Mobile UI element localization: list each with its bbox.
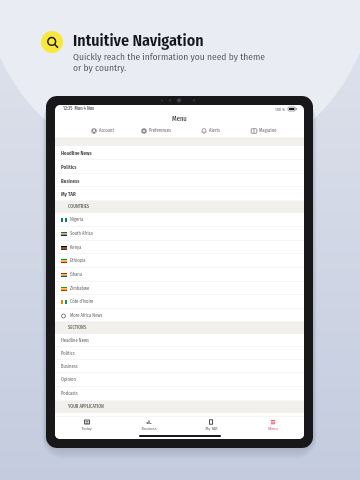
staticText: Alerts [209, 128, 220, 134]
staticText: Magazine [259, 128, 277, 134]
staticText: Zimbabwe [70, 286, 90, 292]
button[interactable]: Business [55, 360, 304, 373]
staticText: Côte d'Ivoire [70, 299, 94, 305]
button[interactable]: Preferences [129, 125, 183, 137]
staticText: Quickly reach the information you need b… [73, 51, 265, 73]
staticText: Today [81, 426, 92, 431]
button[interactable]: Headline News [55, 334, 304, 347]
staticText: YOUR APPLICATION [68, 404, 104, 410]
button[interactable]: Podcasts [55, 387, 304, 401]
button[interactable]: Menu [242, 417, 304, 432]
staticText: Opinion [61, 377, 76, 383]
button[interactable]: Kenya [55, 241, 304, 254]
staticText: SECTIONS [68, 325, 87, 331]
staticText: Headline News [61, 150, 92, 156]
button[interactable]: Ghana [55, 268, 304, 282]
staticText: Preferences [149, 128, 171, 134]
button[interactable]: South Africa [55, 227, 304, 241]
button[interactable]: Nigeria [55, 213, 304, 227]
staticText: Nigeria [70, 217, 84, 223]
staticText: My TAR [205, 426, 218, 431]
staticText: Kenya [70, 245, 82, 251]
button[interactable]: Headline News [55, 146, 304, 160]
staticText: Menu [268, 426, 278, 431]
staticText: COUNTRIES [68, 204, 90, 210]
staticText: 12:35 Mon 4 Nov [63, 106, 95, 112]
button[interactable]: Business [118, 417, 180, 432]
staticText: 100 % [275, 107, 286, 112]
button[interactable]: Côte d'Ivoire [55, 295, 304, 309]
button[interactable]: Zimbabwe [55, 282, 304, 295]
button[interactable]: Ethiopia [55, 254, 304, 268]
staticText: Intuitive Navigation [73, 31, 204, 50]
button[interactable]: Opinion [55, 373, 304, 387]
staticText: Headline News [61, 338, 89, 344]
button[interactable]: Account [75, 125, 129, 137]
staticText: Menu [172, 115, 187, 123]
button[interactable]: Alerts [183, 125, 237, 137]
staticText: Ethiopia [70, 258, 86, 264]
staticText: Business [141, 426, 157, 431]
button[interactable]: Business [55, 174, 304, 187]
button[interactable]: More Africa News [55, 309, 304, 322]
staticText: More Africa News [70, 313, 103, 319]
button[interactable]: Today [55, 417, 118, 432]
button[interactable]: My TAR [55, 187, 304, 201]
button[interactable]: Politics [55, 347, 304, 360]
staticText: Podcasts [61, 391, 78, 397]
staticText: Business [61, 364, 78, 370]
staticText: South Africa [70, 231, 93, 237]
button[interactable]: My TAR [180, 417, 242, 432]
staticText: Politics [61, 351, 75, 357]
staticText: Ghana [70, 272, 82, 278]
staticText: My TAR [61, 191, 76, 197]
staticText: Business [61, 178, 80, 184]
button[interactable]: Magazine [237, 125, 291, 137]
button[interactable]: Politics [55, 160, 304, 174]
staticText: Politics [61, 164, 77, 170]
button[interactable]: Search [41, 31, 63, 53]
staticText: Account [99, 128, 114, 134]
